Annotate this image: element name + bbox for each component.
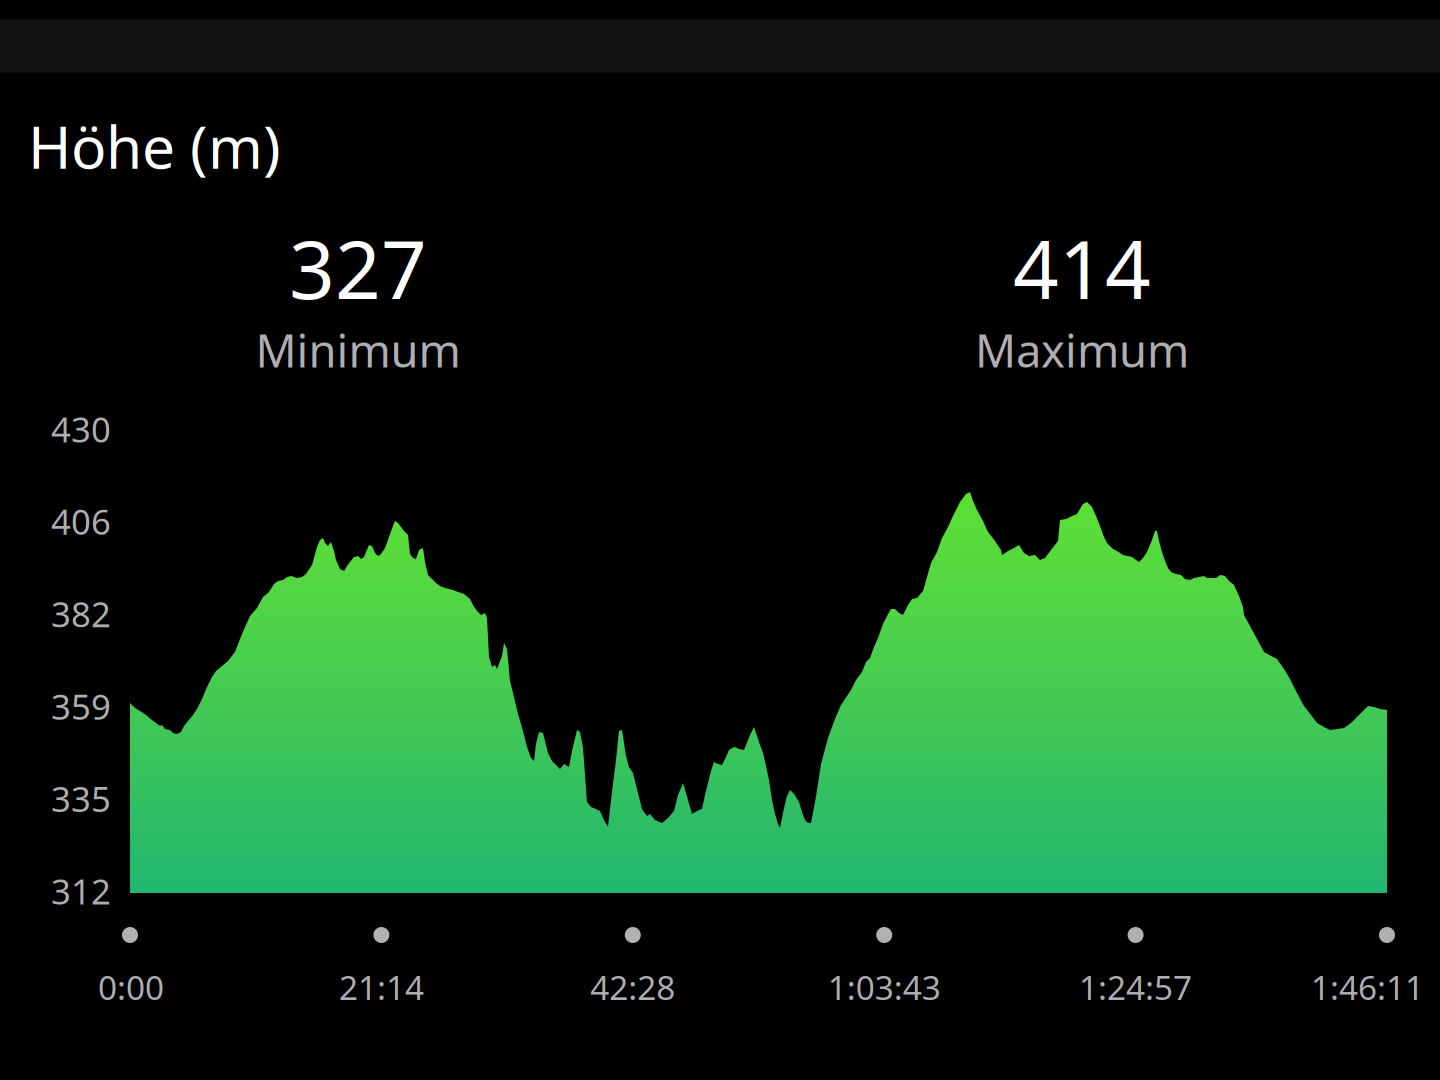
staticText: 312 [51,868,111,914]
button[interactable]: 414 [0,0,1440,1080]
staticText: 1:24:57 [1079,965,1192,1009]
staticText: 21:14 [339,965,424,1009]
staticText: 359 [51,683,111,729]
staticText: Maximum [975,320,1189,380]
staticText: Minimum [255,320,460,380]
button[interactable]: 327 [0,0,1440,1080]
staticText: 42:28 [590,965,675,1009]
button[interactable]: Elevation chart [0,0,1440,1080]
staticText: 335 [51,776,111,822]
staticText: Höhe (m) [28,107,281,185]
staticText: 1:03:43 [828,965,941,1009]
staticText: 430 [51,406,111,452]
staticText: 414 [1013,215,1151,321]
staticText: 1:46:11 [1311,965,1424,1009]
staticText: 327 [289,215,427,321]
staticText: 0:00 [98,965,164,1009]
staticText: 406 [51,498,111,544]
staticText: 382 [51,591,111,637]
